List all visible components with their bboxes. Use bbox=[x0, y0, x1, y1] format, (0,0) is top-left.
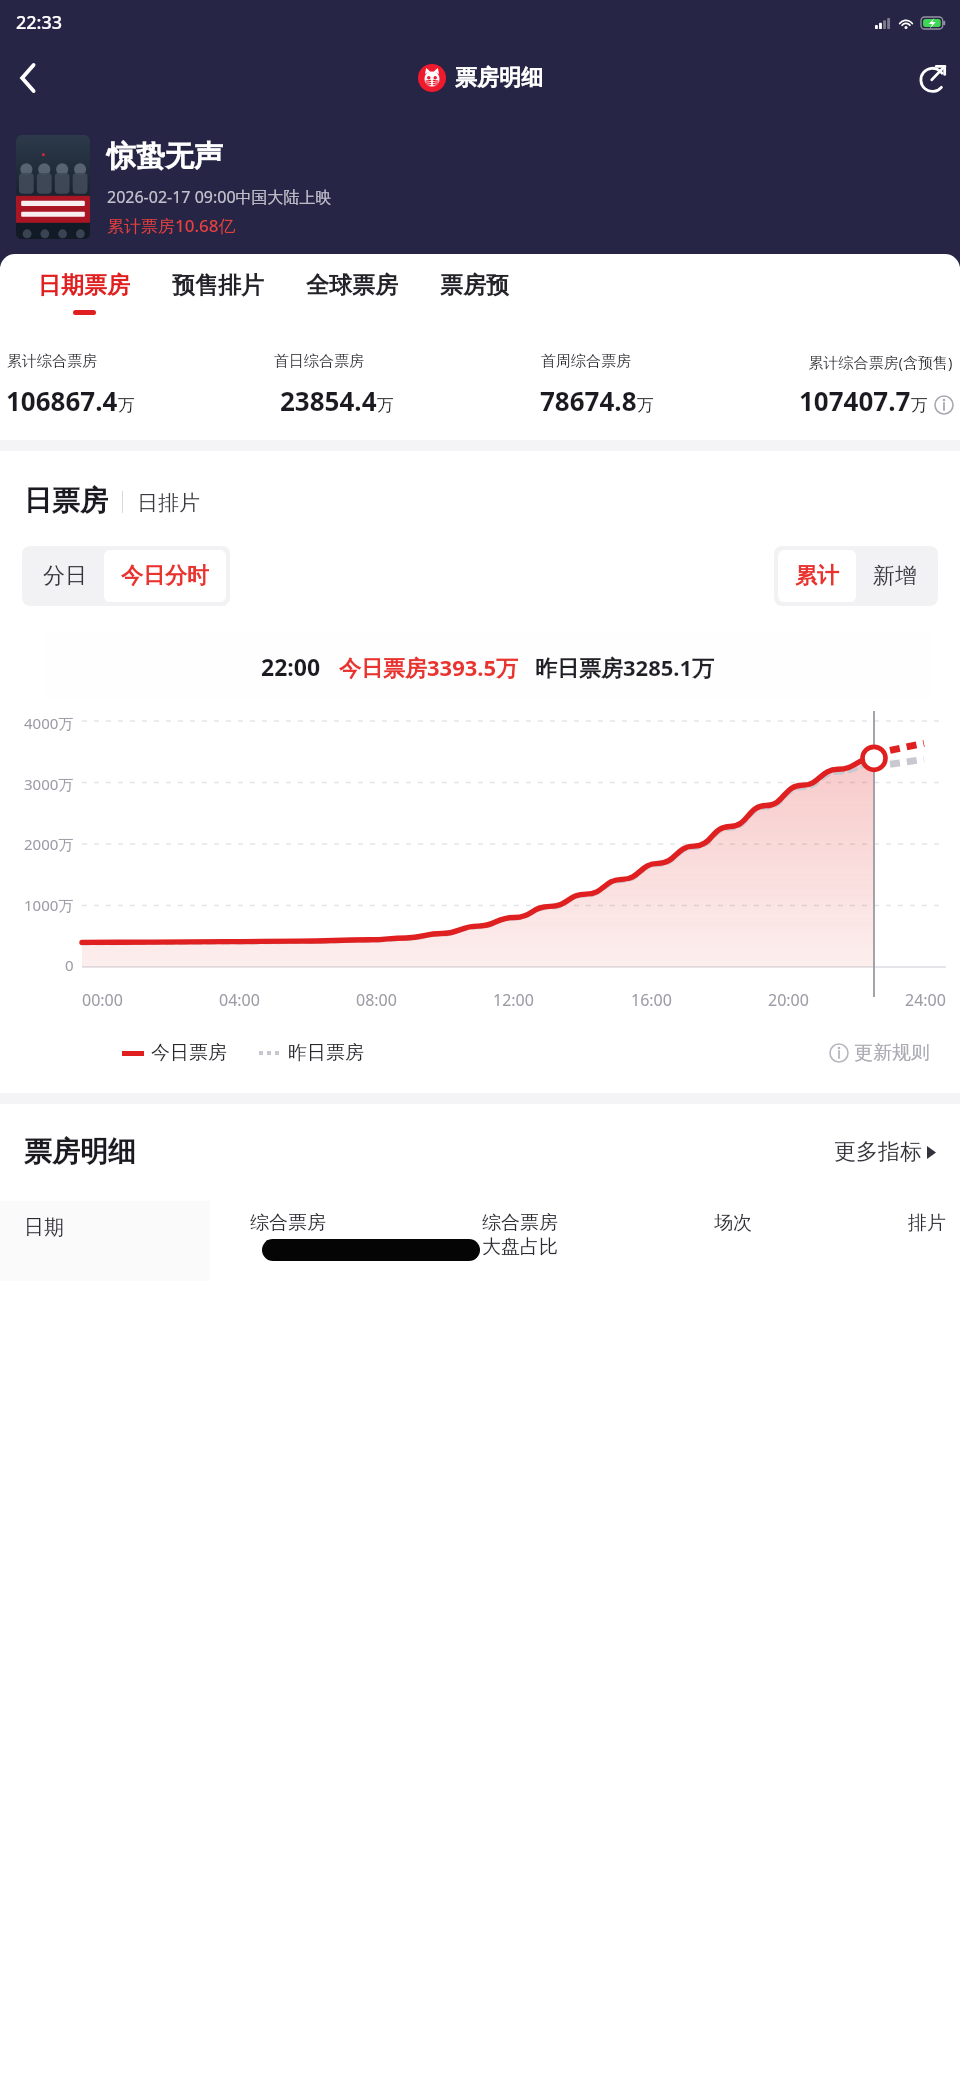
button[interactable]: Back bbox=[0, 50, 56, 106]
button[interactable]: 日排片 bbox=[137, 490, 200, 516]
button[interactable]: Info bbox=[934, 395, 954, 415]
staticText: 综合票房 大盘占比 bbox=[482, 1211, 558, 1259]
staticText: 票房明细 bbox=[455, 64, 543, 92]
staticText: 78674.8 bbox=[540, 383, 637, 418]
staticText: 分日 bbox=[43, 562, 87, 590]
staticText: 106867.4 bbox=[6, 383, 118, 418]
staticText: 00:00 bbox=[82, 989, 123, 1011]
staticText: 万 bbox=[377, 395, 394, 416]
staticText: 综合票房 (万元) bbox=[250, 1211, 326, 1259]
button[interactable]: 累计 bbox=[778, 550, 856, 602]
button[interactable]: 今日分时 bbox=[104, 550, 226, 602]
staticText: 首周综合票房 bbox=[541, 352, 631, 371]
staticText: 04:00 bbox=[219, 989, 260, 1011]
button[interactable]: Share bbox=[904, 50, 960, 106]
button[interactable]: 更多指标 bbox=[834, 1138, 936, 1166]
staticText: 2026-02-17 09:00中国大陆上映 bbox=[107, 186, 332, 208]
staticText: 全球票房 bbox=[306, 271, 398, 300]
staticText: 排片 bbox=[908, 1211, 946, 1235]
staticText: 累计综合票房 bbox=[7, 352, 97, 371]
staticText: 累计票房10.68亿 bbox=[107, 214, 236, 237]
staticText: 新增 bbox=[873, 562, 917, 590]
staticText: 更多指标 bbox=[834, 1138, 922, 1166]
staticText: 万 bbox=[637, 395, 654, 416]
button[interactable]: 更新规则 bbox=[829, 1041, 930, 1065]
staticText: 万 bbox=[118, 395, 135, 416]
staticText: 昨日票房 bbox=[288, 1041, 364, 1065]
staticText: 22:33 bbox=[16, 10, 63, 35]
staticText: 更新规则 bbox=[854, 1041, 930, 1065]
button[interactable]: 票房预 bbox=[440, 271, 509, 315]
staticText: 万 bbox=[911, 395, 928, 416]
staticText: 惊蛰无声 bbox=[107, 138, 223, 175]
staticText: 3000万 bbox=[24, 774, 74, 794]
staticText: 日期票房 bbox=[38, 271, 130, 300]
staticText: 20:00 bbox=[768, 989, 809, 1011]
staticText: 16:00 bbox=[631, 989, 672, 1011]
button[interactable]: 新增 bbox=[856, 550, 934, 602]
button[interactable]: Movie poster bbox=[16, 135, 90, 239]
staticText: 2000万 bbox=[24, 834, 74, 854]
staticText: 首日综合票房 bbox=[274, 352, 364, 371]
staticText: 08:00 bbox=[356, 989, 397, 1011]
staticText: 预售排片 bbox=[172, 271, 264, 300]
staticText: 0 bbox=[65, 955, 74, 975]
button[interactable]: 分日 bbox=[26, 550, 104, 602]
staticText: 累计综合票房(含预售) bbox=[808, 352, 953, 372]
staticText: 今日票房3393.5万 bbox=[339, 652, 519, 682]
staticText: 日期 bbox=[24, 1215, 64, 1240]
staticText: 12:00 bbox=[493, 989, 534, 1011]
staticText: 107407.7 bbox=[799, 383, 911, 418]
staticText: 票房明细 bbox=[24, 1134, 136, 1169]
staticText: 24:00 bbox=[905, 989, 946, 1011]
button[interactable]: 日期票房 bbox=[38, 271, 130, 315]
staticText: 今日票房 bbox=[151, 1041, 227, 1065]
staticText: 场次 bbox=[714, 1211, 752, 1235]
staticText: 票房预 bbox=[440, 271, 509, 300]
staticText: 昨日票房3285.1万 bbox=[535, 652, 715, 682]
button[interactable]: 预售排片 bbox=[172, 271, 264, 315]
staticText: 今日分时 bbox=[121, 562, 209, 590]
staticText: 累计 bbox=[795, 562, 839, 590]
button[interactable]: 全球票房 bbox=[306, 271, 398, 315]
staticText: 1000万 bbox=[24, 895, 74, 915]
staticText: 4000万 bbox=[24, 713, 74, 733]
staticText: 22:00 bbox=[261, 651, 321, 682]
button[interactable]: 日票房 bbox=[24, 483, 108, 518]
staticText: 23854.4 bbox=[280, 383, 377, 418]
